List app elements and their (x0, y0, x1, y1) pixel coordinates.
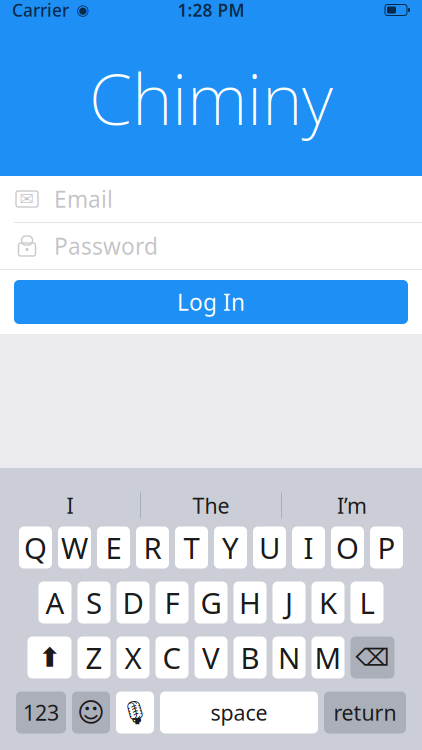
staticText: Log In (177, 287, 245, 317)
button[interactable]: V (194, 636, 227, 678)
staticText: Password (54, 231, 158, 261)
button[interactable]: B (233, 636, 266, 678)
staticText: V (202, 638, 220, 677)
staticText: Y (222, 528, 239, 567)
button[interactable]: K (311, 581, 344, 623)
button[interactable]: T (175, 526, 208, 568)
staticText: T (183, 528, 199, 567)
button[interactable]: space (160, 691, 318, 733)
staticText: H (239, 583, 261, 622)
staticText: Carrier (12, 0, 69, 21)
button[interactable]: R (136, 526, 169, 568)
button[interactable]: X (116, 636, 149, 678)
button[interactable]: G (194, 581, 227, 623)
staticText: W (61, 528, 88, 567)
staticText: R (143, 528, 161, 567)
staticText: S (86, 583, 102, 622)
staticText: D (122, 583, 143, 622)
staticText: K (319, 583, 337, 622)
staticText: O (336, 528, 359, 567)
staticText: ☺ (77, 697, 105, 728)
staticText: A (45, 583, 64, 622)
staticText: ⌫ (355, 644, 389, 671)
staticText: 123 (23, 698, 59, 727)
staticText: ◉ (76, 2, 89, 18)
button[interactable]: The (141, 484, 281, 526)
button[interactable]: U (253, 526, 286, 568)
staticText: J (285, 583, 293, 622)
button[interactable]: C (155, 636, 188, 678)
staticText: space (210, 698, 267, 727)
staticText: E (105, 528, 121, 567)
staticText: Q (24, 528, 47, 567)
button[interactable]: Password (0, 223, 422, 269)
staticText: L (359, 583, 374, 622)
staticText: C (162, 638, 181, 677)
button[interactable]: Q (19, 526, 52, 568)
button[interactable]: Dictation (116, 691, 154, 733)
staticText: M (314, 638, 341, 677)
button[interactable]: ✉ (0, 176, 422, 222)
button[interactable]: 123 (16, 691, 66, 733)
staticText: G (200, 583, 221, 622)
staticText: 🎙 (120, 700, 149, 725)
staticText: return (333, 698, 396, 727)
button[interactable]: I’m (282, 484, 422, 526)
button[interactable]: D (116, 581, 149, 623)
staticText: Chiminy (89, 52, 333, 144)
staticText: I (303, 528, 313, 567)
button[interactable]: Emoji (72, 691, 110, 733)
button[interactable]: A (38, 581, 71, 623)
staticText: 1:28 PM (177, 0, 244, 21)
staticText: I’m (337, 491, 367, 520)
button[interactable]: Delete (350, 636, 394, 678)
button[interactable]: W (58, 526, 91, 568)
staticText: F (164, 583, 179, 622)
button[interactable]: return (324, 691, 406, 733)
button[interactable]: O (331, 526, 364, 568)
button[interactable]: Shift (27, 636, 71, 678)
button[interactable]: I (292, 526, 325, 568)
staticText: Email (54, 184, 113, 214)
button[interactable]: F (155, 581, 188, 623)
staticText: U (259, 528, 280, 567)
staticText: N (278, 638, 300, 677)
button[interactable]: J (272, 581, 305, 623)
button[interactable]: Z (77, 636, 110, 678)
staticText: P (377, 528, 395, 567)
button[interactable]: Y (214, 526, 247, 568)
staticText: The (192, 491, 229, 520)
staticText: X (124, 638, 141, 677)
staticText: I (66, 491, 73, 520)
button[interactable]: H (233, 581, 266, 623)
staticText: Z (85, 638, 102, 677)
button[interactable]: S (77, 581, 110, 623)
staticText: B (240, 638, 259, 677)
button[interactable]: I (0, 484, 140, 526)
button[interactable]: P (370, 526, 403, 568)
button[interactable]: M (311, 636, 344, 678)
button[interactable]: N (272, 636, 305, 678)
button[interactable]: Log In (14, 280, 408, 324)
staticText: ⬆ (38, 642, 60, 673)
staticText: ✉ (19, 189, 34, 209)
button[interactable]: E (97, 526, 130, 568)
button[interactable]: L (350, 581, 383, 623)
